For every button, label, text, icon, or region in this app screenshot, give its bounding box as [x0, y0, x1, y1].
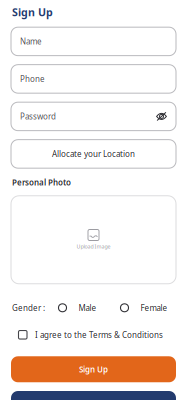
staticText: Upload Image	[76, 243, 110, 250]
button[interactable]: Upload Image	[11, 196, 176, 284]
staticText: Sign Up	[79, 364, 108, 375]
staticText: Allocate your Location	[52, 149, 135, 159]
staticText: Name	[20, 36, 42, 47]
staticText: I agree to the Terms & Conditions	[35, 329, 163, 340]
staticText: Password	[20, 111, 56, 122]
button[interactable]: I agree to the Terms & Conditions	[11, 330, 176, 340]
button[interactable]: Name	[11, 27, 176, 56]
button[interactable]: Log In	[11, 391, 176, 400]
staticText: Gender :	[12, 302, 45, 313]
staticText: Phone	[20, 74, 45, 84]
staticText: Male	[78, 302, 96, 313]
button[interactable]: Sign Up	[11, 356, 176, 382]
staticText: Sign Up	[12, 5, 53, 19]
staticText: Personal Photo	[12, 177, 71, 188]
button[interactable]: Female	[120, 302, 167, 313]
button[interactable]: Password	[11, 102, 176, 131]
staticText: Female	[140, 302, 167, 313]
button[interactable]: Male	[58, 302, 96, 313]
button[interactable]: Allocate your Location	[11, 140, 176, 168]
button[interactable]: Phone	[11, 65, 176, 93]
